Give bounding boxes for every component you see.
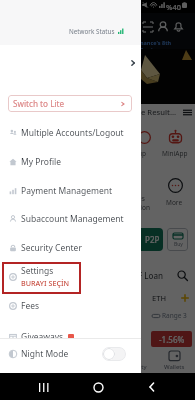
staticText: BURAYI SEÇİN — [21, 278, 70, 288]
staticText: Wallets — [164, 363, 185, 371]
button[interactable]: Notifications — [171, 19, 186, 34]
staticText: More — [166, 198, 183, 207]
button[interactable]: Network Status — [0, 25, 124, 37]
staticText: nance's 8th Anniversary — [140, 39, 195, 49]
button[interactable]: Switch to Lite — [8, 95, 132, 112]
staticText: -1.56% — [159, 334, 185, 345]
staticText: Payment Management — [21, 185, 113, 197]
staticText: Multiple Accounts/Logout — [21, 127, 124, 139]
button[interactable]: Recents — [31, 375, 55, 399]
button[interactable]: Security Center — [0, 233, 141, 262]
button[interactable]: Back — [140, 375, 164, 399]
button[interactable]: Scan — [141, 20, 154, 33]
staticText: es — [138, 194, 145, 203]
staticText: Giveaways — [21, 331, 64, 343]
staticText: ETH — [152, 293, 167, 303]
staticText: My Profile — [21, 156, 61, 168]
button[interactable]: My Profile — [0, 147, 141, 176]
staticText: MiniApp — [162, 149, 188, 158]
staticText: Fees — [21, 300, 40, 312]
staticText: Buy — [174, 241, 183, 248]
button[interactable]: Night Mode — [0, 341, 141, 366]
staticText: %40 — [166, 2, 181, 12]
staticText: Network Status — [69, 27, 115, 36]
button[interactable]: Giveaways — [0, 322, 141, 351]
staticText: Subaccount Management — [21, 213, 124, 225]
button[interactable]: Payment Management — [0, 176, 141, 205]
staticText: tion — [138, 203, 150, 212]
staticText: Security Center — [21, 242, 82, 254]
button[interactable]: Expand — [127, 57, 139, 69]
staticText: Switch to Lite — [13, 98, 65, 109]
staticText: Range 3 — [162, 311, 187, 320]
staticText: nity — [136, 363, 147, 371]
button[interactable]: Buy — [167, 228, 188, 251]
button[interactable]: Home — [86, 375, 110, 399]
staticText: e Result... — [141, 107, 177, 117]
staticText: Settings — [21, 265, 54, 277]
staticText: P2P — [145, 234, 160, 245]
button[interactable]: Profile — [155, 19, 170, 34]
button[interactable]: Settings — [0, 262, 141, 291]
button[interactable]: Subaccount Management — [0, 204, 141, 233]
button[interactable]: Fees — [0, 291, 141, 320]
staticText: Night Mode — [21, 348, 69, 360]
staticText: up — [138, 149, 147, 158]
button[interactable]: P2P — [130, 228, 163, 251]
staticText: F Loan — [138, 270, 164, 281]
button[interactable]: Multiple Accounts/Logout — [0, 118, 141, 147]
